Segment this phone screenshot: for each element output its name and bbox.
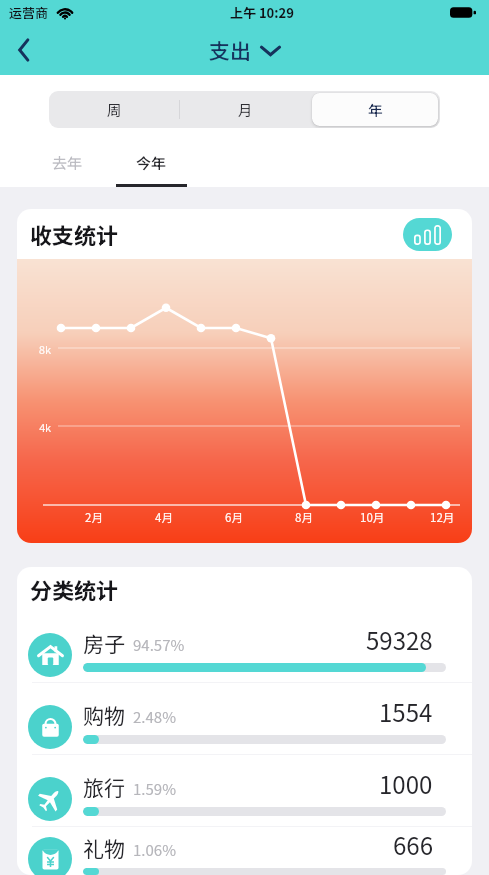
staticText: 上午 10:29	[230, 3, 294, 22]
staticText: 4月	[155, 509, 173, 526]
staticText: 8k	[39, 341, 52, 357]
staticText: 周	[107, 99, 122, 120]
staticText: 支出	[209, 35, 251, 65]
button[interactable]: 房子	[17, 611, 472, 682]
button[interactable]: 年	[312, 93, 438, 126]
staticText: 666	[393, 827, 433, 862]
staticText: 8月	[295, 509, 313, 526]
staticText: 年	[368, 99, 383, 120]
staticText: 礼物	[83, 833, 125, 863]
staticText: 12月	[430, 509, 455, 526]
staticText: 分类统计	[30, 573, 119, 605]
staticText: 房子	[83, 628, 125, 658]
staticText: 收支统计	[30, 218, 119, 250]
button[interactable]: 购物	[17, 683, 472, 754]
button[interactable]: Back	[4, 30, 44, 70]
staticText: 1554	[379, 694, 433, 729]
staticText: 59328	[366, 622, 433, 657]
staticText: 今年	[136, 152, 167, 174]
button[interactable]: 今年	[116, 152, 187, 187]
button[interactable]: 旅行	[17, 755, 472, 826]
button[interactable]: 去年	[32, 152, 103, 187]
staticText: 2月	[85, 509, 103, 526]
button[interactable]: 礼物	[17, 827, 472, 875]
staticText: 购物	[83, 700, 125, 730]
staticText: 去年	[52, 152, 83, 174]
button[interactable]: 周	[51, 93, 178, 126]
staticText: 4k	[39, 419, 52, 435]
staticText: 旅行	[83, 772, 125, 802]
staticText: 1.59%	[133, 778, 176, 800]
button[interactable]: Bar chart	[403, 218, 452, 251]
staticText: 2.48%	[133, 706, 176, 728]
button[interactable]: 支出	[201, 31, 289, 69]
button[interactable]: 月	[182, 93, 308, 126]
staticText: 94.57%	[133, 634, 185, 656]
staticText: 1000	[379, 766, 433, 801]
staticText: 10月	[360, 509, 385, 526]
staticText: 运营商	[9, 3, 49, 22]
staticText: 月	[238, 99, 253, 120]
staticText: 1.06%	[133, 839, 176, 861]
staticText: 6月	[225, 509, 243, 526]
